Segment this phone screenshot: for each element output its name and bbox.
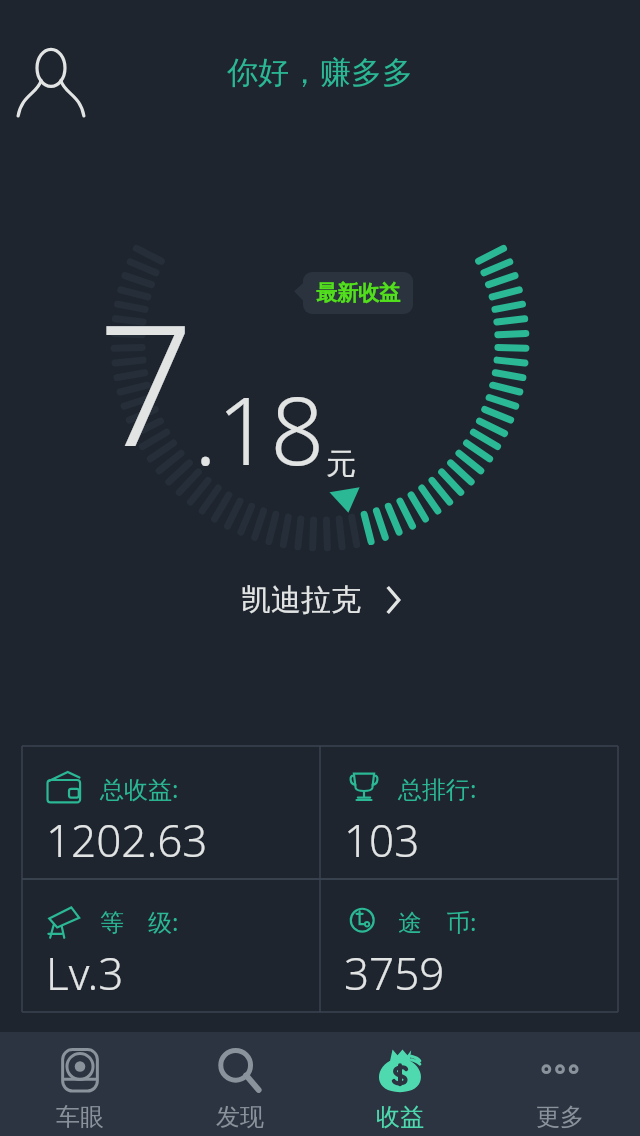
staticText: 总收益:: [100, 772, 179, 805]
staticText: 最新收益: [316, 280, 400, 306]
button[interactable]: 最新收益: [303, 272, 413, 314]
staticText: 你好，赚多多: [227, 53, 413, 92]
staticText: 元: [326, 445, 356, 483]
staticText: 更多: [536, 1102, 584, 1132]
staticText: 103: [344, 810, 420, 870]
staticText: 途 币:: [398, 905, 477, 938]
staticText: 发现: [216, 1102, 264, 1132]
staticText: 总排行:: [398, 772, 477, 805]
button[interactable]: 车眼: [0, 1032, 160, 1136]
staticText: 收益: [376, 1102, 424, 1132]
staticText: 车眼: [56, 1102, 104, 1132]
button[interactable]: 总收益:: [22, 746, 320, 879]
button[interactable]: 更多: [480, 1032, 640, 1136]
staticText: .18: [194, 365, 325, 493]
button[interactable]: 收益: [320, 1032, 480, 1136]
staticText: 等 级:: [100, 905, 179, 938]
staticText: 凯迪拉克: [241, 581, 361, 619]
button[interactable]: 凯迪拉克: [215, 569, 426, 631]
button[interactable]: 等 级:: [22, 879, 320, 1012]
button[interactable]: 发现: [160, 1032, 320, 1136]
button[interactable]: 总排行:: [320, 746, 618, 879]
button[interactable]: Profile: [16, 42, 86, 116]
staticText: 3759: [344, 943, 445, 1003]
staticText: 1202.63: [46, 810, 208, 870]
staticText: 7: [98, 266, 194, 495]
staticText: Lv.3: [46, 943, 124, 1003]
button[interactable]: 途 币:: [320, 879, 618, 1012]
